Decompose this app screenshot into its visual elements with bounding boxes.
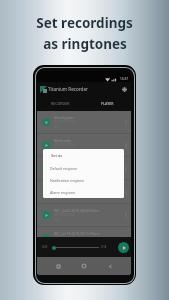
staticText: Set as [51,153,63,158]
staticText: Set recordings [36,14,133,32]
staticText: Notes.m4a [54,138,71,142]
button[interactable]: REC_Jul-20-2019_04:08:54 am [37,204,131,227]
button[interactable]: PLAYER [84,96,131,111]
staticText: PLAYER [101,101,114,106]
button[interactable]: RECORDER [37,96,84,111]
staticText: 12:18 [54,195,61,199]
staticText: Default ringtone [50,166,78,171]
staticText: 01:05 [54,148,61,152]
button[interactable]: Settings [120,85,129,94]
button[interactable]: Play [118,242,129,253]
staticText: Meeting.wav [54,115,74,119]
button[interactable]: Notification ringtone [43,174,124,186]
staticText: Titanium Recorder [48,86,88,92]
button[interactable]: Recents [53,261,63,271]
staticText: Alarm ringtone [50,190,75,195]
button[interactable]: More options [122,165,129,172]
staticText: REC_Jul-20-2019_04:08:54 am [54,208,100,212]
button[interactable]: Back [105,261,115,271]
staticText: Notification ringtone [50,178,85,183]
staticText: 2019-07-21 11:30 [54,190,75,194]
button[interactable]: REC_Jul-22-2019_01:04:36 am [37,157,131,180]
button[interactable]: Home [79,261,89,271]
staticText: 14:37 [120,77,129,81]
staticText: 0:14 [101,245,107,249]
staticText: 0:00 [42,245,48,249]
staticText: RECORDER [51,101,70,106]
staticText: 2019-07-22 01:04 [54,166,75,170]
button[interactable]: REC_Jul-19-2019_05:11:09 pm [37,227,131,250]
button[interactable]: Default ringtone [43,162,124,174]
button[interactable]: More options [122,189,129,196]
staticText: REC_Jul-19-2019_05:11:09 pm [54,231,100,235]
button[interactable]: Alarm ringtone [43,186,124,198]
button[interactable]: More options [122,119,129,126]
staticText: 2019-07-19 05:11 [54,236,75,240]
staticText: as ringtones [43,35,127,53]
button[interactable]: More options [122,142,129,149]
button[interactable]: Meeting.wav [37,111,131,134]
button[interactable]: More options [122,235,129,242]
button[interactable]: More options [122,212,129,219]
button[interactable]: REC_Jul-21-2019_11:30:02 am [37,181,131,204]
button[interactable]: Notes.m4a [37,134,131,157]
